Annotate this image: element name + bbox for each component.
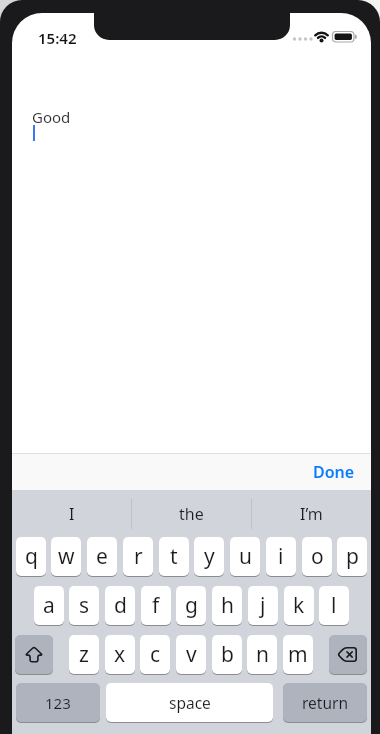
staticText: space bbox=[169, 692, 211, 713]
staticText: Done bbox=[313, 461, 355, 483]
staticText: the bbox=[179, 503, 204, 525]
staticText: v bbox=[186, 640, 197, 669]
staticText: t bbox=[170, 542, 178, 571]
staticText: i bbox=[278, 542, 284, 571]
staticText: r bbox=[134, 542, 143, 571]
button[interactable]: z bbox=[69, 635, 99, 674]
button[interactable]: Done bbox=[313, 461, 355, 483]
button[interactable]: w bbox=[51, 537, 81, 576]
button[interactable]: e bbox=[87, 537, 117, 576]
staticText: g bbox=[185, 591, 198, 620]
staticText: e bbox=[96, 542, 108, 571]
staticText: p bbox=[346, 542, 359, 571]
staticText: return bbox=[302, 692, 348, 713]
button[interactable]: c bbox=[140, 635, 170, 674]
button[interactable]: q bbox=[16, 537, 46, 576]
staticText: o bbox=[311, 542, 324, 571]
staticText: s bbox=[79, 591, 90, 620]
button[interactable]: b bbox=[212, 635, 242, 674]
staticText: 123 bbox=[45, 693, 71, 713]
button[interactable]: i bbox=[266, 537, 296, 576]
button[interactable] bbox=[15, 635, 53, 674]
button[interactable]: u bbox=[230, 537, 260, 576]
button[interactable]: v bbox=[176, 635, 206, 674]
button[interactable]: k bbox=[284, 586, 314, 625]
button[interactable]: I’m bbox=[252, 490, 371, 537]
button[interactable]: n bbox=[247, 635, 277, 674]
button[interactable] bbox=[329, 635, 367, 674]
button[interactable]: t bbox=[159, 537, 189, 576]
staticText: c bbox=[150, 640, 161, 669]
staticText: w bbox=[58, 542, 75, 571]
staticText: x bbox=[114, 640, 126, 669]
staticText: z bbox=[79, 640, 89, 669]
staticText: l bbox=[331, 591, 337, 620]
staticText: u bbox=[239, 542, 252, 571]
button[interactable]: s bbox=[69, 586, 99, 625]
button[interactable]: p bbox=[337, 537, 367, 576]
staticText: I bbox=[69, 503, 75, 525]
button[interactable]: f bbox=[141, 586, 171, 625]
button[interactable]: m bbox=[283, 635, 313, 674]
button[interactable]: g bbox=[176, 586, 206, 625]
staticText: 15:42 bbox=[38, 28, 77, 48]
button[interactable]: o bbox=[302, 537, 332, 576]
button[interactable]: space bbox=[106, 683, 273, 722]
button[interactable]: the bbox=[132, 490, 251, 537]
button[interactable]: x bbox=[105, 635, 135, 674]
button[interactable]: 123 bbox=[16, 683, 100, 722]
staticText: Good bbox=[32, 107, 71, 127]
staticText: f bbox=[152, 591, 160, 620]
button[interactable]: d bbox=[105, 586, 135, 625]
staticText: b bbox=[221, 640, 234, 669]
button[interactable]: y bbox=[194, 537, 224, 576]
button[interactable]: return bbox=[283, 683, 367, 722]
staticText: j bbox=[260, 591, 266, 620]
staticText: m bbox=[288, 640, 308, 669]
staticText: q bbox=[25, 542, 38, 571]
button[interactable]: l bbox=[319, 586, 349, 625]
button[interactable]: h bbox=[212, 586, 242, 625]
button[interactable]: a bbox=[34, 586, 64, 625]
button[interactable]: j bbox=[248, 586, 278, 625]
button[interactable]: I bbox=[12, 490, 131, 537]
staticText: k bbox=[293, 591, 305, 620]
staticText: d bbox=[114, 591, 127, 620]
button[interactable]: r bbox=[123, 537, 153, 576]
staticText: I’m bbox=[300, 503, 323, 525]
staticText: h bbox=[221, 591, 234, 620]
staticText: a bbox=[43, 591, 55, 620]
staticText: n bbox=[256, 640, 269, 669]
staticText: y bbox=[204, 542, 215, 571]
